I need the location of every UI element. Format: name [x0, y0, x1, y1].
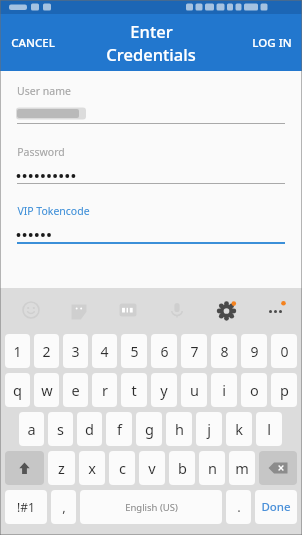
staticText: y — [160, 380, 168, 400]
staticText: o — [250, 380, 259, 400]
button[interactable]: m — [229, 451, 255, 485]
staticText: . — [237, 498, 241, 516]
staticText: s — [57, 419, 64, 439]
staticText: w — [41, 380, 53, 400]
staticText: 0 — [280, 342, 289, 361]
button[interactable]: 1 — [5, 334, 30, 368]
button[interactable]: t — [121, 373, 147, 407]
button[interactable]: i — [211, 373, 237, 407]
staticText: t — [131, 380, 137, 400]
staticText: 5 — [130, 342, 139, 361]
button[interactable]: d — [77, 412, 102, 446]
button[interactable]: q — [5, 373, 30, 407]
staticText: l — [267, 419, 271, 439]
staticText: 9 — [250, 342, 259, 361]
button[interactable]: Done — [255, 490, 297, 524]
button[interactable]: w — [34, 373, 59, 407]
button[interactable]: n — [199, 451, 225, 485]
button[interactable]: b — [169, 451, 195, 485]
button[interactable]: 0 — [271, 334, 297, 368]
button[interactable]: u — [181, 373, 207, 407]
button[interactable]: CANCEL — [0, 14, 66, 71]
button[interactable]: More options — [262, 297, 288, 323]
staticText: v — [148, 458, 156, 478]
staticText: k — [235, 419, 243, 439]
button[interactable]: a — [19, 412, 44, 446]
staticText: q — [13, 380, 22, 400]
staticText: VIP Tokencode — [17, 204, 90, 218]
button[interactable]: p — [271, 373, 297, 407]
staticText: CANCEL — [11, 35, 55, 51]
button[interactable]: v — [139, 451, 165, 485]
button[interactable]: j — [196, 412, 222, 446]
button[interactable]: . — [226, 490, 251, 524]
button[interactable]: 7 — [181, 334, 207, 368]
staticText: g — [145, 419, 154, 439]
staticText: Password — [17, 145, 65, 159]
staticText: 3 — [71, 342, 80, 361]
button[interactable]: g — [136, 412, 162, 446]
staticText: a — [27, 419, 36, 439]
button[interactable]: f — [106, 412, 132, 446]
staticText: u — [190, 380, 199, 400]
button[interactable]: Shift — [5, 451, 44, 485]
button[interactable] — [17, 167, 285, 182]
button[interactable]: Emoji — [18, 297, 44, 323]
staticText: Credentials — [106, 43, 196, 65]
staticText: c — [119, 458, 126, 478]
staticText: m — [235, 458, 249, 478]
staticText: e — [71, 380, 80, 400]
button[interactable]: h — [166, 412, 192, 446]
button[interactable]: Stickers — [66, 297, 92, 323]
button[interactable]: Settings — [213, 297, 239, 323]
staticText: i — [222, 380, 226, 400]
staticText: 4 — [100, 342, 109, 361]
staticText: p — [280, 380, 289, 400]
staticText: !#1 — [17, 499, 35, 515]
button[interactable]: 6 — [151, 334, 177, 368]
staticText: j — [207, 419, 211, 439]
button[interactable]: 9 — [241, 334, 267, 368]
staticText: User name — [17, 84, 71, 98]
staticText: 2 — [42, 342, 51, 361]
button[interactable] — [17, 226, 285, 241]
staticText: 8 — [220, 342, 229, 361]
button[interactable]: k — [226, 412, 252, 446]
staticText: 1 — [13, 342, 22, 361]
button[interactable]: l — [256, 412, 282, 446]
button[interactable]: r — [92, 373, 117, 407]
button[interactable]: Voice input — [164, 297, 190, 323]
button[interactable]: o — [241, 373, 267, 407]
button[interactable]: 4 — [92, 334, 117, 368]
button[interactable]: y — [151, 373, 177, 407]
staticText: h — [175, 419, 184, 439]
staticText: z — [58, 458, 65, 478]
button[interactable]: 3 — [63, 334, 88, 368]
button[interactable] — [17, 107, 285, 121]
button[interactable]: c — [109, 451, 135, 485]
button[interactable]: English (US) — [80, 490, 222, 524]
staticText: Enter — [130, 20, 173, 42]
button[interactable]: x — [79, 451, 105, 485]
staticText: 6 — [160, 342, 169, 361]
button[interactable]: Backspace — [259, 451, 297, 485]
staticText: Done — [261, 499, 291, 515]
staticText: English (US) — [125, 501, 178, 514]
staticText: LOG IN — [252, 35, 292, 51]
staticText: d — [85, 419, 94, 439]
button[interactable]: !#1 — [5, 490, 47, 524]
button[interactable]: , — [51, 490, 76, 524]
button[interactable]: e — [63, 373, 88, 407]
button[interactable]: 2 — [34, 334, 59, 368]
staticText: x — [88, 458, 96, 478]
staticText: , — [62, 498, 66, 516]
button[interactable]: z — [48, 451, 75, 485]
button[interactable]: 8 — [211, 334, 237, 368]
button[interactable]: 5 — [121, 334, 147, 368]
staticText: 7 — [190, 342, 199, 361]
button[interactable]: s — [48, 412, 73, 446]
staticText: b — [178, 458, 187, 478]
staticText: r — [102, 380, 108, 400]
button[interactable]: GIF — [115, 297, 141, 323]
button[interactable]: LOG IN — [242, 14, 302, 71]
